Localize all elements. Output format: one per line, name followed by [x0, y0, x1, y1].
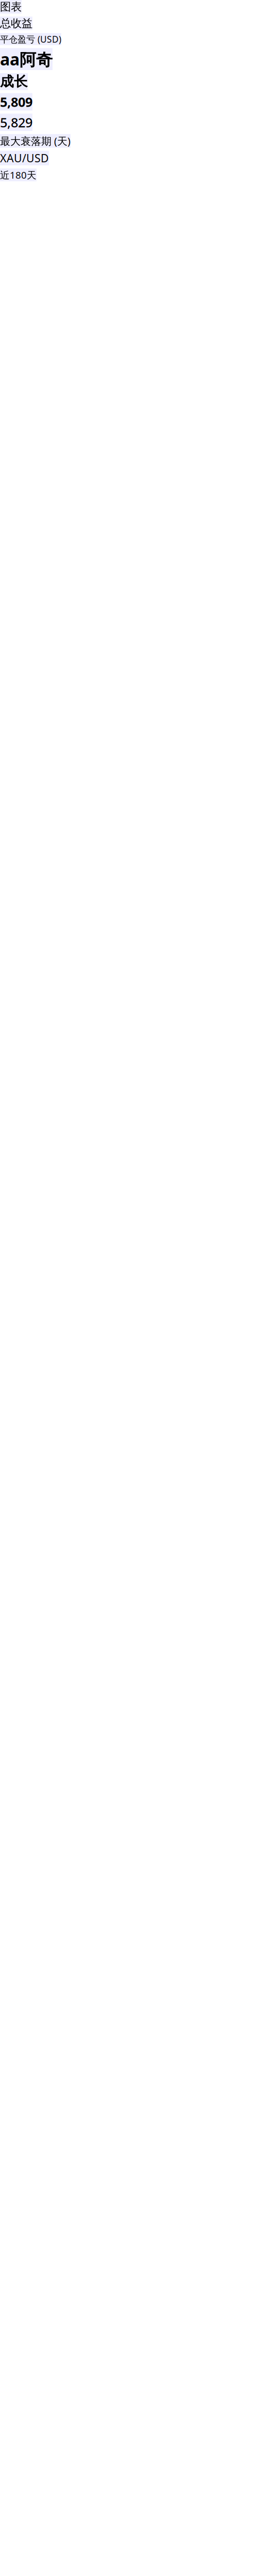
staticText: 5,829 — [0, 114, 32, 131]
staticText: 5,809 — [0, 93, 32, 110]
staticText: 图表 — [0, 0, 22, 13]
staticText: 近180天 — [0, 168, 37, 181]
staticText: 最大衰落期 (天) — [0, 134, 71, 148]
staticText: 成长 — [0, 73, 28, 90]
staticText: XAU/USD — [0, 151, 49, 165]
staticText: 平仓盈亏 (USD) — [0, 33, 61, 45]
staticText: aa阿奇 — [0, 48, 53, 70]
staticText: 总收益 — [0, 17, 32, 30]
